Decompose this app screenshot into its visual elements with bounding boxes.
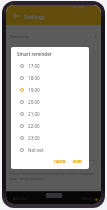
staticText: Smart reminder bbox=[17, 51, 52, 57]
button[interactable]: CANCEL bbox=[51, 158, 70, 166]
staticText: 21:00 bbox=[28, 111, 40, 117]
staticText: CANCEL bbox=[54, 160, 67, 164]
staticText: Not set bbox=[28, 147, 44, 153]
button[interactable]: 20:00 bbox=[11, 96, 89, 108]
staticText: Future balance bbox=[10, 163, 40, 169]
button[interactable]: DONE bbox=[70, 158, 85, 166]
button[interactable]: Back bbox=[10, 10, 22, 22]
staticText: Recurring bbox=[10, 34, 29, 39]
staticText: Future dated transactions will be used t… bbox=[10, 171, 97, 181]
staticText: 18:00 bbox=[28, 75, 40, 81]
button[interactable]: 18:00 bbox=[11, 72, 89, 84]
button[interactable]: 23:00 bbox=[11, 132, 89, 144]
button[interactable]: 21:00 bbox=[11, 108, 89, 120]
staticText: 22:00 bbox=[28, 123, 40, 129]
staticText: Settings bbox=[24, 13, 45, 20]
button[interactable]: Not set bbox=[11, 144, 89, 156]
staticText: Not set bbox=[82, 197, 93, 201]
staticText: 23:00 bbox=[28, 135, 40, 141]
staticText: DONE bbox=[73, 160, 82, 164]
staticText: 20:00 bbox=[28, 99, 40, 105]
staticText: 17:00 bbox=[28, 63, 40, 69]
button[interactable]: 22:00 bbox=[11, 120, 89, 132]
staticText: New task bbox=[13, 197, 27, 201]
staticText: 19:00 bbox=[28, 87, 40, 93]
button[interactable]: 17:00 bbox=[11, 60, 89, 72]
button[interactable]: 19:00 bbox=[11, 84, 89, 96]
